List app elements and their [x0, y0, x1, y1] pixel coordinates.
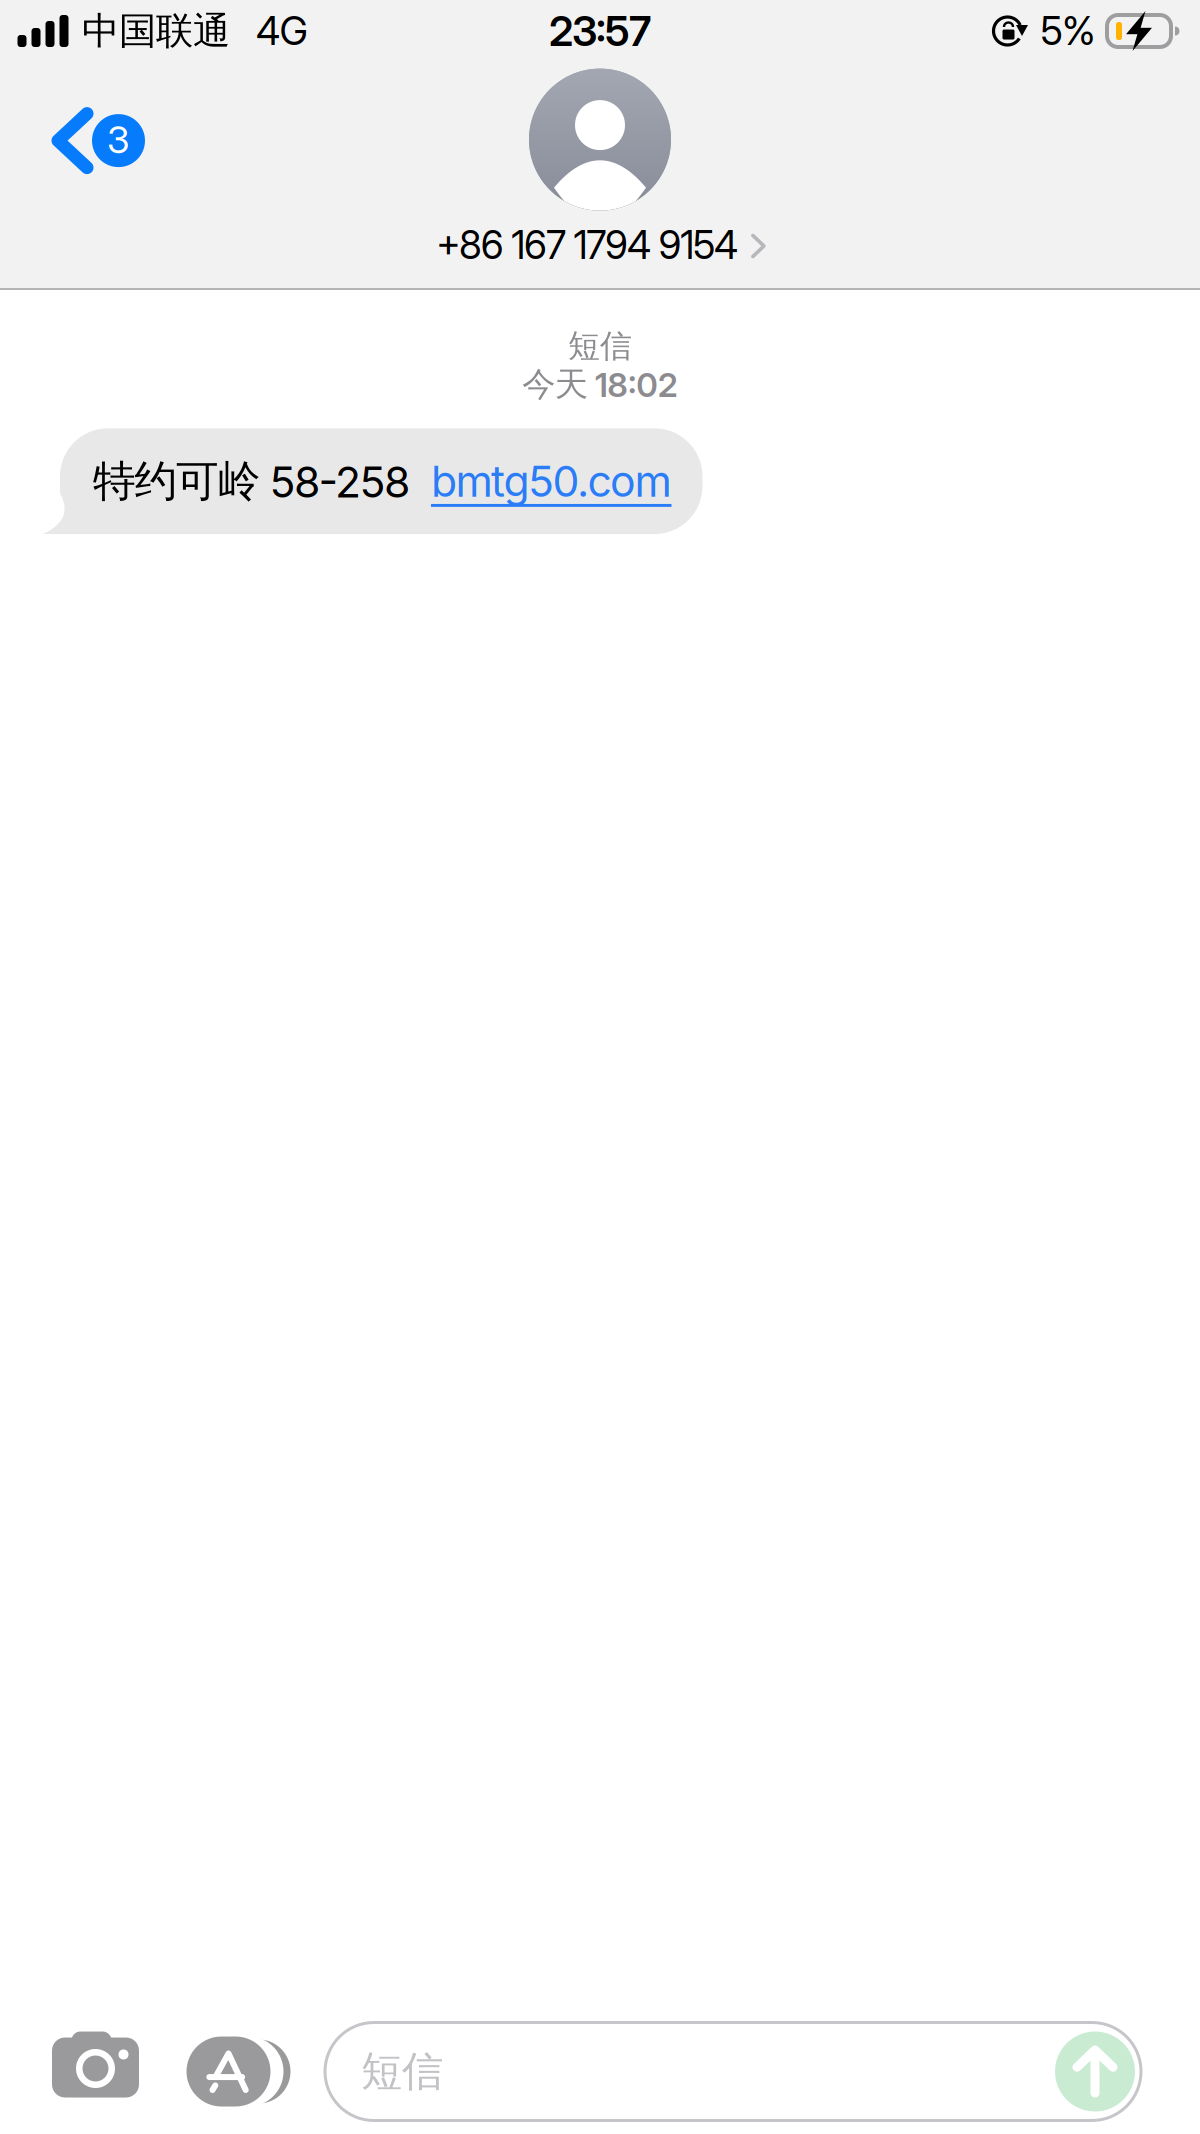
button[interactable]: 短信 [325, 2022, 1141, 2120]
staticText: 4G [256, 8, 307, 54]
staticText: 23:57 [549, 6, 651, 56]
staticText: 今天 18:02 [522, 363, 678, 405]
staticText: bmtg50.com [431, 455, 671, 507]
button[interactable]: Back, 3 unread [0, 90, 171, 192]
staticText: 5% [1040, 8, 1096, 54]
button[interactable]: Apps [167, 2022, 292, 2120]
button[interactable]: Camera [42, 2022, 149, 2121]
button[interactable]: +86 167 1794 9154 [436, 69, 764, 268]
staticText: 3 [107, 117, 130, 162]
staticText: 中国联通 [82, 7, 230, 54]
staticText: +86 167 1794 9154 [436, 222, 738, 268]
staticText: 特约可岭 58-258 [93, 454, 431, 508]
staticText: 短信 [361, 2045, 443, 2098]
staticText: 短信 [568, 326, 632, 366]
